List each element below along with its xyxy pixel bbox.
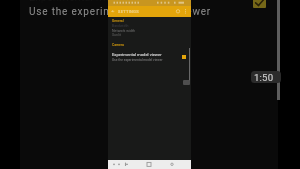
button[interactable]: Back xyxy=(122,160,131,169)
staticText: SETTINGS xyxy=(118,9,139,14)
button[interactable]: More options xyxy=(182,6,190,17)
staticText: General xyxy=(112,19,124,23)
staticText: Network width xyxy=(112,29,136,33)
staticText: Sunlit xyxy=(112,33,121,37)
staticText: Use the experimental model viewer xyxy=(29,6,212,18)
staticText: Experimental model viewer xyxy=(112,52,162,57)
staticText: Bandwidth xyxy=(112,24,129,28)
staticText: 1:50 xyxy=(254,72,274,83)
button[interactable]: Experimental model viewer xyxy=(108,50,191,62)
button[interactable]: Switch keyboard xyxy=(110,160,122,169)
button[interactable]: Bandwidth xyxy=(108,23,191,32)
button[interactable]: Search xyxy=(174,6,182,17)
button[interactable]: 1:50 xyxy=(251,71,281,83)
button[interactable]: Recent apps xyxy=(168,160,177,169)
staticText: Use the experimental model viewer xyxy=(112,58,163,62)
button[interactable]: Sunlit xyxy=(108,31,191,37)
staticText: Camera xyxy=(112,43,124,47)
button[interactable]: Navigate up xyxy=(110,6,118,17)
staticText: Experimental model viewer xyxy=(29,0,161,4)
button[interactable]: Toggle experimental model viewer xyxy=(253,0,266,8)
button[interactable]: Home xyxy=(143,160,155,169)
